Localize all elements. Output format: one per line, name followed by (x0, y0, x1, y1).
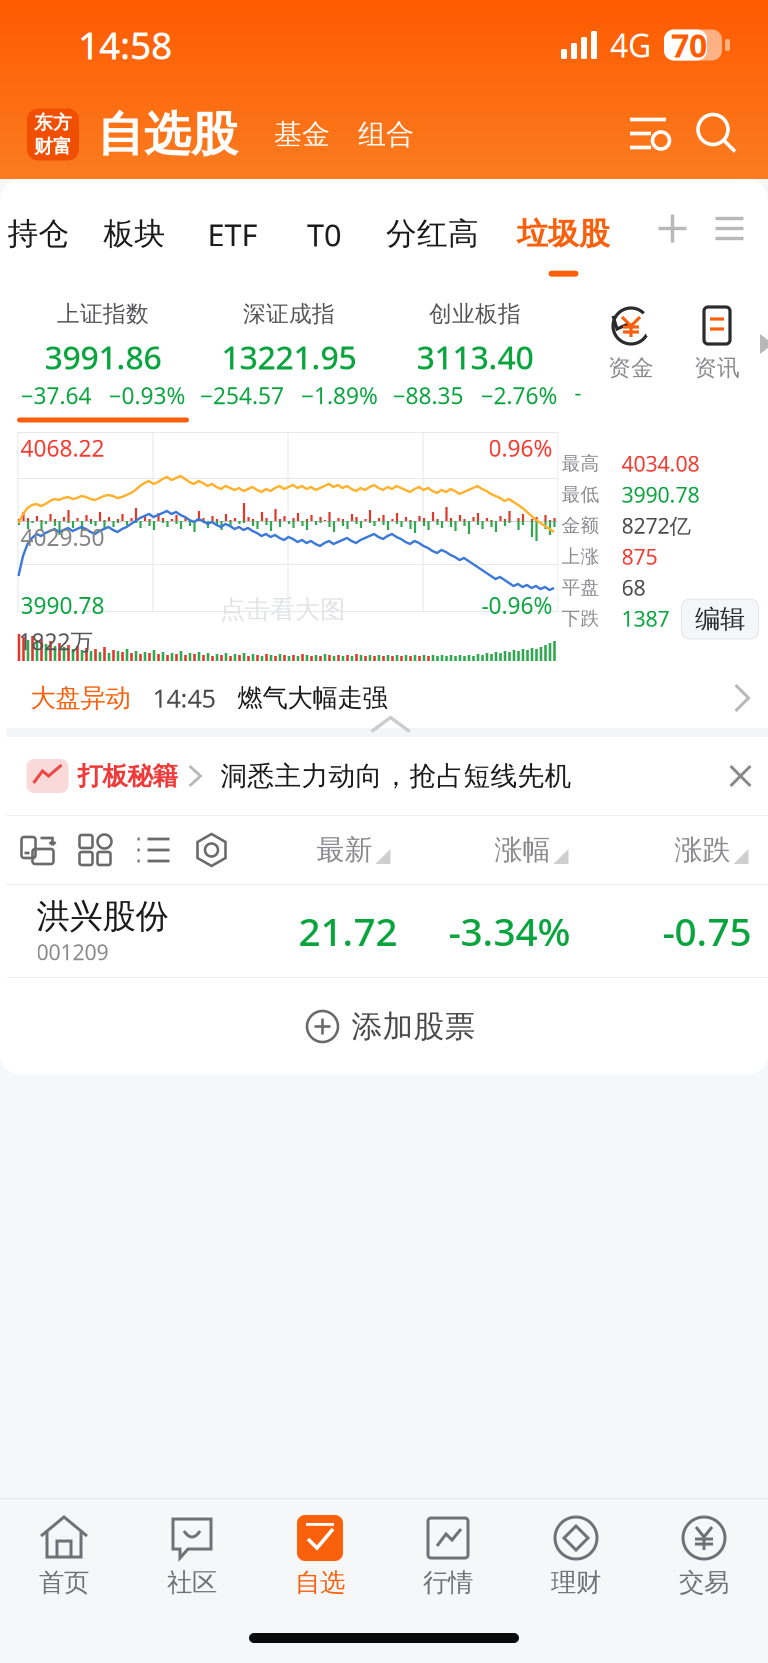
staticText: 创业板指 (429, 300, 521, 328)
staticText: 14:45 (152, 681, 215, 715)
button[interactable]: List view (124, 816, 182, 884)
staticText: 最新 (316, 833, 372, 867)
button[interactable]: 创业板指 (382, 278, 568, 428)
staticText: 3113.40 (416, 336, 533, 378)
button[interactable]: 自选 (256, 1499, 384, 1611)
button[interactable]: 涨幅 (390, 816, 568, 884)
button[interactable]: 持仓 (0, 179, 84, 278)
staticText: 首页 (39, 1567, 89, 1598)
staticText: −1.89% (301, 380, 378, 410)
button[interactable]: 理财 (512, 1499, 640, 1611)
staticText: −37.64 (20, 380, 91, 410)
staticText: 东方 (34, 111, 72, 134)
staticText: - (574, 378, 581, 406)
staticText: 自选股 (97, 106, 238, 163)
staticText: 涨幅 (494, 833, 550, 867)
staticText: T0 (307, 214, 342, 255)
staticText: 最高 (561, 452, 599, 475)
button[interactable]: Add list (646, 179, 698, 278)
staticText: 组合 (358, 117, 414, 152)
button[interactable]: 上证指数 (10, 278, 196, 428)
staticText: 68 (621, 573, 645, 602)
staticText: 平盘 (561, 576, 599, 599)
button[interactable]: Sort settings (618, 101, 684, 167)
staticText: 交易 (679, 1567, 729, 1598)
staticText: 下跌 (561, 607, 599, 630)
staticText: 最低 (561, 483, 599, 506)
button[interactable]: 垃圾股 (496, 179, 630, 278)
staticText: -0.75 (662, 905, 751, 957)
button[interactable]: 添加股票 (6, 978, 768, 1075)
staticText: 金额 (561, 514, 599, 537)
staticText: 0.96% (488, 433, 552, 463)
staticText: 14:58 (78, 20, 172, 70)
button[interactable]: 交易 (640, 1499, 768, 1611)
staticText: 1822万 (18, 626, 93, 656)
staticText: 上涨 (561, 545, 599, 568)
staticText: 社区 (167, 1567, 217, 1598)
button[interactable]: Grid view (66, 816, 124, 884)
staticText: 持仓 (7, 215, 69, 253)
staticText: 70 (671, 24, 707, 66)
staticText: 大盘异动 (30, 682, 130, 713)
staticText: -3.34% (448, 905, 570, 957)
staticText: −254.57 (200, 380, 284, 410)
staticText: 添加股票 (351, 1008, 475, 1045)
button[interactable]: All lists (698, 179, 760, 278)
staticText: 001209 (36, 938, 108, 966)
button[interactable]: Close (714, 737, 766, 815)
button[interactable]: Compare view (8, 816, 66, 884)
staticText: 分红高 (386, 215, 479, 253)
button[interactable]: 分红高 (368, 179, 496, 278)
staticText: 燃气大幅走强 (237, 682, 387, 713)
button[interactable]: 大盘异动 (6, 668, 768, 728)
button[interactable]: 涨跌 (568, 816, 748, 884)
staticText: 3990.78 (621, 480, 699, 509)
button[interactable]: Settings (182, 816, 240, 884)
staticText: 4G (610, 24, 651, 66)
staticText: 洪兴股份 (36, 896, 168, 937)
button[interactable]: Search (684, 101, 750, 167)
staticText: 13221.95 (221, 336, 356, 378)
staticText: 资讯 (694, 354, 740, 382)
button[interactable]: 深证成指 (196, 278, 382, 428)
staticText: 基金 (274, 117, 330, 152)
staticText: −0.93% (108, 380, 185, 410)
staticText: 洞悉主力动向，抢占短线先机 (220, 760, 571, 792)
staticText: 资金 (608, 354, 654, 382)
staticText: 3991.86 (44, 336, 161, 378)
button[interactable]: 资金 (588, 278, 674, 428)
button[interactable]: 基金 (260, 104, 344, 164)
staticText: 编辑 (695, 603, 745, 634)
staticText: 板块 (103, 215, 165, 253)
staticText: 深证成指 (243, 300, 335, 328)
button[interactable]: 编辑 (681, 599, 758, 639)
button[interactable]: 组合 (344, 104, 428, 164)
staticText: 4068.22 (20, 433, 104, 463)
staticText: 自选 (295, 1567, 345, 1598)
button[interactable]: T0 (280, 179, 368, 278)
staticText: 点击看大图 (220, 594, 345, 625)
staticText: 21.72 (298, 905, 397, 957)
staticText: 垃圾股 (517, 215, 610, 253)
staticText: 打板秘籍 (77, 760, 177, 791)
button[interactable]: 板块 (84, 179, 184, 278)
staticText: 1387 (621, 604, 669, 633)
staticText: 涨跌 (674, 833, 730, 867)
staticText: 875 (621, 542, 657, 571)
button[interactable]: 资讯 (674, 278, 760, 428)
button[interactable]: 洪兴股份 (6, 885, 768, 977)
staticText: 4029.50 (20, 522, 104, 552)
button[interactable]: 最新 (240, 816, 390, 884)
button[interactable]: 首页 (0, 1499, 128, 1611)
staticText: 8272亿 (621, 511, 690, 540)
button[interactable]: ETF (184, 179, 280, 278)
staticText: −2.76% (480, 380, 557, 410)
staticText: 4034.08 (621, 449, 699, 478)
button[interactable]: 行情 (384, 1499, 512, 1611)
staticText: 3990.78 (20, 590, 104, 620)
staticText: 理财 (551, 1567, 601, 1598)
staticText: 行情 (423, 1567, 473, 1598)
button[interactable]: 社区 (128, 1499, 256, 1611)
staticText: ETF (207, 214, 257, 255)
